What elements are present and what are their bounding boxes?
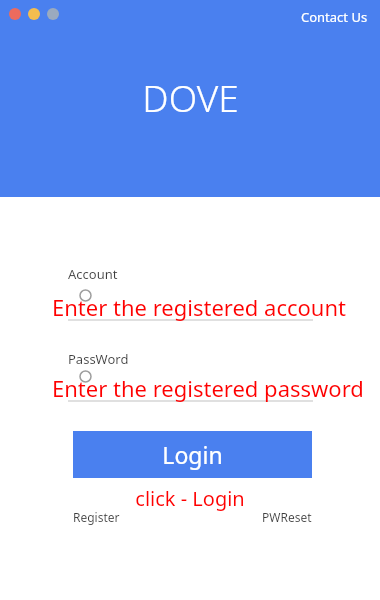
staticText: PWReset	[262, 509, 312, 525]
button[interactable]: Maximize	[43, 4, 62, 23]
button[interactable]: PWReset	[262, 509, 312, 525]
button[interactable]: Minimize	[24, 4, 43, 23]
button[interactable]: Close	[5, 4, 24, 23]
staticText: Account	[68, 265, 118, 283]
staticText: click - Login	[135, 485, 245, 512]
staticText: Enter the registered password	[52, 373, 364, 403]
staticText: PassWord	[68, 350, 129, 368]
button[interactable]: Login	[73, 431, 312, 478]
staticText: Login	[162, 439, 223, 470]
staticText: Contact Us	[301, 8, 368, 26]
button[interactable]	[68, 290, 313, 322]
staticText: DOVE	[142, 72, 239, 122]
button[interactable]: Contact Us	[297, 6, 372, 28]
button[interactable]: Register	[73, 509, 120, 525]
staticText: Enter the registered account	[52, 292, 347, 322]
staticText: Register	[73, 509, 120, 525]
button[interactable]	[68, 371, 313, 403]
